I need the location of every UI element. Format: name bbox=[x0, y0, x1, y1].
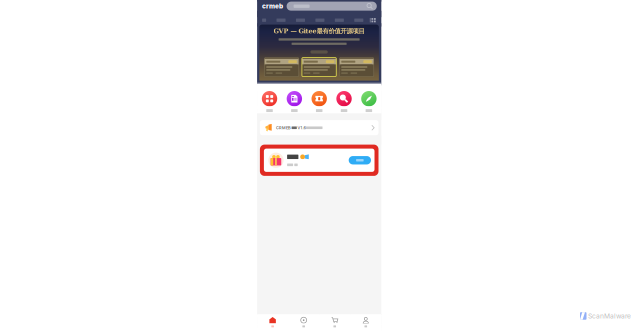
staticText: CRMEB bbox=[276, 125, 291, 130]
staticText: ScanMalware bbox=[588, 312, 631, 320]
button[interactable]: Coupons bbox=[307, 91, 332, 106]
button[interactable]: Search bbox=[287, 2, 377, 11]
button[interactable]: Category bbox=[335, 18, 344, 22]
button[interactable]: 我的 bbox=[350, 314, 381, 331]
staticText: GVP — Gitee最有价值开源项目 bbox=[274, 27, 365, 35]
button[interactable]: GVP Gitee most valuable open source proj… bbox=[259, 25, 379, 85]
button[interactable]: 首页 bbox=[257, 314, 288, 331]
button[interactable]: 购物车 bbox=[319, 314, 350, 331]
button[interactable]: All categories bbox=[369, 17, 377, 23]
button[interactable]: Search bbox=[332, 91, 356, 106]
button[interactable]: Category bbox=[262, 18, 266, 22]
button[interactable]: Category bbox=[296, 18, 305, 22]
button[interactable]: Categories bbox=[257, 91, 282, 106]
button[interactable]: CRMEB open source V1.6 release announcem… bbox=[257, 120, 381, 135]
button[interactable]: Category bbox=[276, 18, 285, 22]
button[interactable]: Category bbox=[354, 18, 363, 22]
staticText: crmeb bbox=[262, 2, 283, 10]
button[interactable]: Discover bbox=[356, 91, 381, 106]
staticText: V1.6 bbox=[297, 125, 305, 130]
button[interactable]: 分类 bbox=[288, 314, 319, 331]
button[interactable]: CRMEB home bbox=[262, 2, 283, 10]
button[interactable]: Promotion, claim now bbox=[257, 145, 381, 176]
button[interactable]: Orders bbox=[282, 91, 307, 106]
button[interactable]: Category bbox=[315, 18, 324, 22]
